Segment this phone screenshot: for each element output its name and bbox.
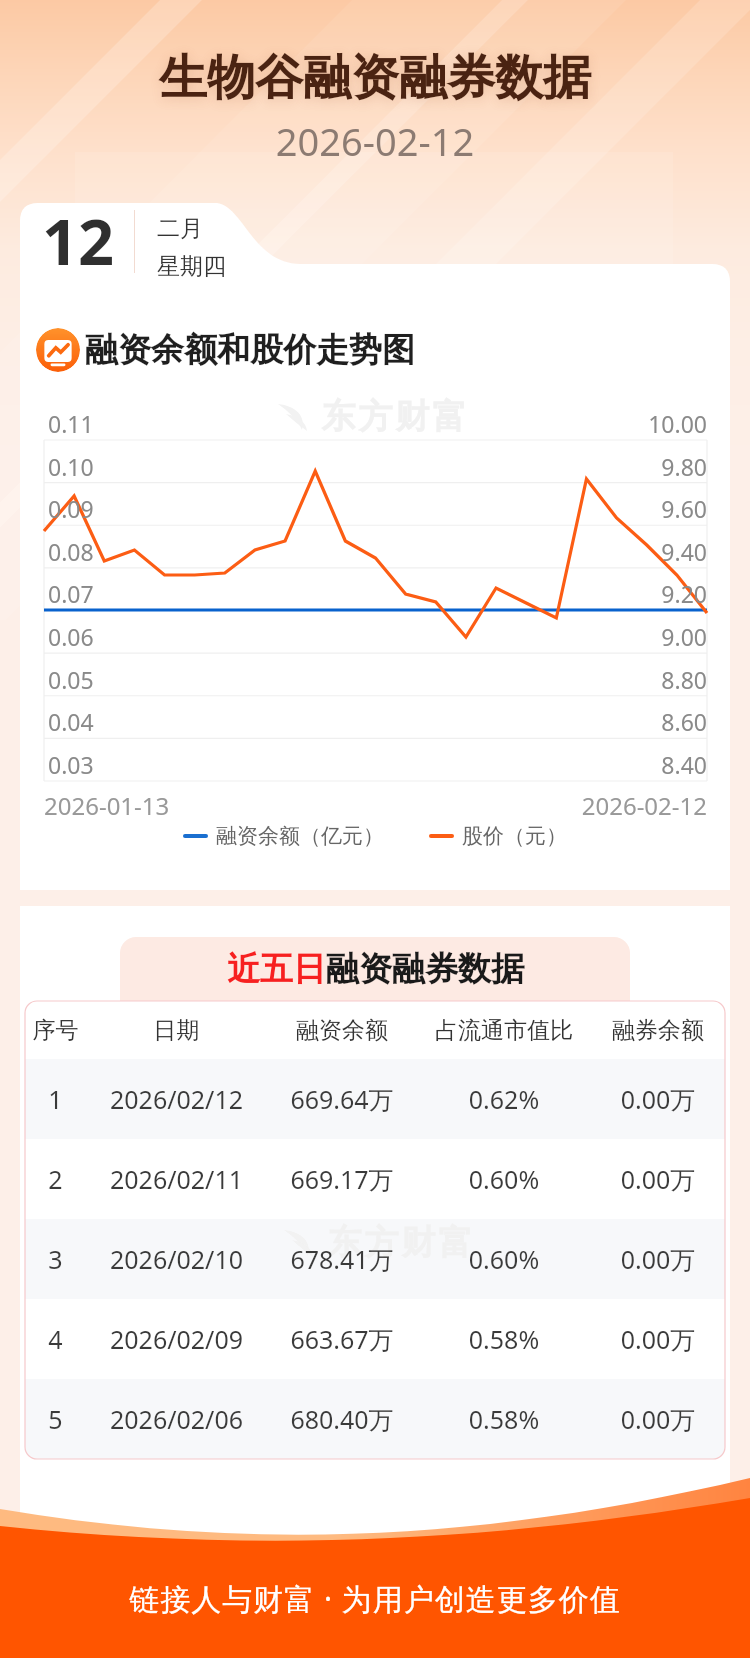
staticText: 生物谷融资融券数据 (0, 48, 750, 108)
staticText: 9.80 (0, 451, 707, 482)
staticText: 9.60 (0, 493, 707, 524)
staticText: 占流通市值比 (417, 1016, 591, 1045)
staticText: 融资余额和股价走势图 (85, 329, 415, 371)
staticText: 2026/02/12 (86, 1082, 267, 1116)
staticText: 2026-02-12 (0, 115, 750, 167)
staticText: 股价（元） (462, 823, 567, 849)
staticText: 8.60 (0, 706, 707, 737)
button[interactable]: 5 (25, 1379, 725, 1459)
staticText: 序号 (25, 1016, 86, 1045)
staticText: 2026/02/09 (86, 1322, 267, 1356)
button[interactable]: 1 (25, 1059, 725, 1139)
staticText: 8.80 (0, 664, 707, 695)
staticText: 0.58% (417, 1322, 591, 1356)
staticText: 9.20 (0, 578, 707, 609)
staticText: 0.00万 (591, 1082, 725, 1116)
staticText: 8.40 (0, 749, 707, 780)
staticText: 融资融券数据 (326, 948, 524, 990)
staticText: 0.60% (417, 1242, 591, 1276)
staticText: 9.40 (0, 536, 707, 567)
staticText: 12 (42, 198, 115, 284)
staticText: 0.09 (48, 493, 94, 524)
staticText: 0.06 (48, 621, 94, 652)
button[interactable]: 2 (25, 1139, 725, 1219)
staticText: 2 (25, 1162, 86, 1196)
staticText: 2026-01-13 (44, 789, 170, 822)
staticText: 3 (25, 1242, 86, 1276)
staticText: 0.04 (48, 706, 94, 737)
staticText: 融券余额 (591, 1016, 725, 1045)
staticText: 0.58% (417, 1402, 591, 1436)
staticText: 0.62% (417, 1082, 591, 1116)
staticText: 669.17万 (267, 1162, 417, 1196)
staticText: 9.00 (0, 621, 707, 652)
button[interactable]: 融资余额和股价走势图 (36, 328, 80, 372)
staticText: 669.64万 (267, 1082, 417, 1116)
staticText: 2026/02/10 (86, 1242, 267, 1276)
button[interactable]: 4 (25, 1299, 725, 1379)
staticText: 0.08 (48, 536, 94, 567)
staticText: 链接人与财富 · 为用户创造更多价值 (0, 1578, 750, 1619)
staticText: 融资余额 (267, 1016, 417, 1045)
staticText: 东方财富 (320, 395, 468, 438)
staticText: 0.03 (48, 749, 94, 780)
staticText: 663.67万 (267, 1322, 417, 1356)
button[interactable]: 3 (25, 1219, 725, 1299)
staticText: 东方财富 (326, 1221, 474, 1264)
staticText: 0.00万 (591, 1242, 725, 1276)
staticText: 2026/02/11 (86, 1162, 267, 1196)
staticText: 二月 (157, 214, 203, 243)
staticText: 0.05 (48, 664, 94, 695)
staticText: 近五日 (227, 948, 326, 990)
staticText: 0.00万 (591, 1402, 725, 1436)
staticText: 融资余额（亿元） (216, 823, 384, 849)
staticText: 1 (25, 1082, 86, 1116)
staticText: 2026/02/06 (86, 1402, 267, 1436)
staticText: 星期四 (157, 252, 226, 281)
staticText: 0.00万 (591, 1162, 725, 1196)
staticText: 680.40万 (267, 1402, 417, 1436)
staticText: 4 (25, 1322, 86, 1356)
staticText: 0.11 (48, 408, 94, 439)
staticText: 日期 (86, 1016, 267, 1045)
staticText: 0.07 (48, 578, 94, 609)
staticText: 0.60% (417, 1162, 591, 1196)
staticText: 0.10 (48, 451, 94, 482)
staticText: 5 (25, 1402, 86, 1436)
staticText: 10.00 (0, 408, 707, 439)
staticText: 678.41万 (267, 1242, 417, 1276)
staticText: 2026-02-12 (0, 789, 707, 822)
staticText: 0.00万 (591, 1322, 725, 1356)
